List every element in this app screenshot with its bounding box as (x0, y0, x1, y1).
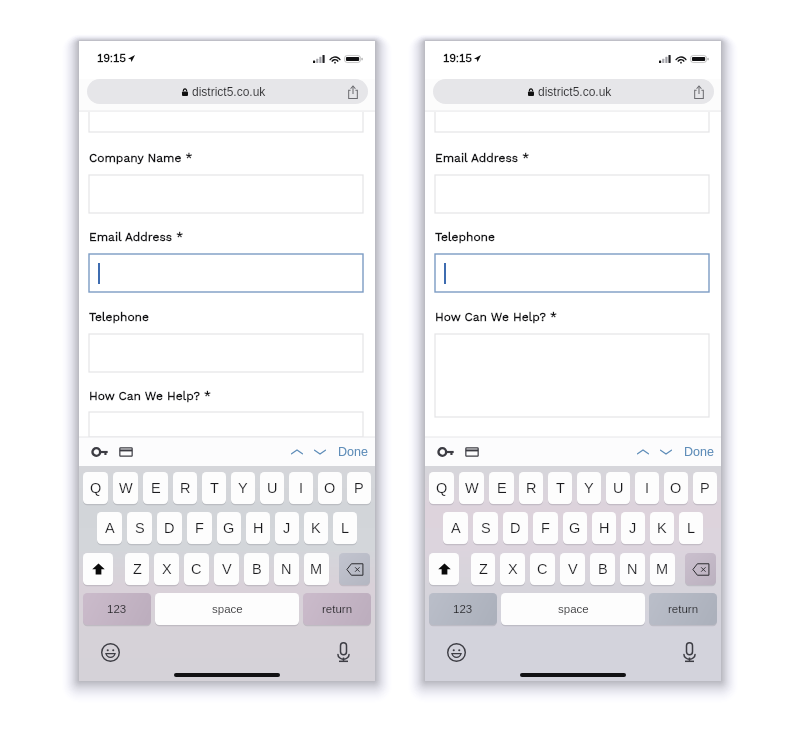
staticText: K (311, 520, 321, 536)
button[interactable] (89, 334, 363, 372)
button[interactable]: Passwords (438, 446, 454, 458)
button[interactable]: L (333, 512, 357, 544)
button[interactable]: O (664, 472, 688, 504)
button[interactable]: L (679, 512, 703, 544)
button[interactable]: 123 (83, 593, 151, 626)
button[interactable]: D (503, 512, 528, 544)
button[interactable]: Next field (312, 445, 328, 459)
button[interactable]: H (592, 512, 616, 544)
button[interactable]: Z (125, 553, 149, 585)
button[interactable]: M (304, 553, 329, 585)
button[interactable]: E (143, 472, 168, 504)
staticText: V (222, 561, 232, 577)
staticText: 123 (453, 603, 473, 616)
button[interactable]: M (650, 553, 675, 585)
button[interactable]: F (187, 512, 212, 544)
button[interactable]: O (318, 472, 342, 504)
button[interactable]: W (459, 472, 484, 504)
staticText: space (558, 603, 589, 616)
button[interactable]: Y (577, 472, 601, 504)
staticText: D (164, 520, 175, 536)
button[interactable]: K (650, 512, 674, 544)
button[interactable] (89, 412, 363, 437)
button[interactable]: Backspace (685, 553, 716, 586)
button[interactable]: U (606, 472, 630, 504)
button[interactable]: Cards (465, 446, 479, 458)
button[interactable]: W (113, 472, 138, 504)
button[interactable]: C (530, 553, 555, 585)
button[interactable]: V (560, 553, 585, 585)
button[interactable]: H (246, 512, 270, 544)
staticText: J (283, 520, 291, 536)
staticText: How Can We Help? * (435, 310, 557, 324)
button[interactable]: return (303, 593, 371, 626)
button[interactable]: Z (471, 553, 495, 585)
button[interactable]: T (202, 472, 226, 504)
button[interactable]: N (620, 553, 645, 585)
button[interactable]: S (473, 512, 498, 544)
button[interactable]: Shift (429, 553, 459, 586)
button[interactable]: Backspace (339, 553, 370, 586)
button[interactable]: Previous field (289, 445, 305, 459)
staticText: R (526, 480, 537, 496)
button[interactable]: Done (684, 445, 714, 459)
button[interactable]: Next field (658, 445, 674, 459)
button[interactable] (435, 254, 709, 292)
button[interactable]: K (304, 512, 328, 544)
button[interactable]: S (127, 512, 152, 544)
button[interactable]: B (244, 553, 269, 585)
button[interactable]: district5.co.uk (87, 79, 368, 104)
button[interactable]: J (275, 512, 299, 544)
button[interactable]: return (649, 593, 717, 626)
button[interactable]: Emoji (101, 643, 120, 662)
button[interactable]: Done (338, 445, 368, 459)
button[interactable]: R (519, 472, 543, 504)
button[interactable]: T (548, 472, 572, 504)
button[interactable]: D (157, 512, 182, 544)
staticText: C (191, 561, 202, 577)
button[interactable] (89, 175, 363, 213)
button[interactable]: E (489, 472, 514, 504)
staticText: U (267, 480, 278, 496)
button[interactable]: Cards (119, 446, 133, 458)
button[interactable]: Q (83, 472, 108, 504)
button[interactable]: P (693, 472, 717, 504)
button[interactable]: Q (429, 472, 454, 504)
button[interactable]: V (214, 553, 239, 585)
button[interactable]: I (289, 472, 313, 504)
button[interactable]: Shift (83, 553, 113, 586)
button[interactable]: X (500, 553, 525, 585)
button[interactable]: Dictation (682, 642, 697, 663)
button[interactable]: space (501, 593, 645, 626)
button[interactable]: 123 (429, 593, 497, 626)
button[interactable]: space (155, 593, 299, 626)
staticText: return (668, 603, 699, 616)
button[interactable]: G (217, 512, 241, 544)
button[interactable]: U (260, 472, 284, 504)
button[interactable]: Share (347, 85, 359, 99)
button[interactable] (435, 175, 709, 213)
button[interactable]: Dictation (336, 642, 351, 663)
staticText: M (656, 561, 669, 577)
button[interactable]: I (635, 472, 659, 504)
button[interactable]: C (184, 553, 209, 585)
button[interactable]: Previous field (635, 445, 651, 459)
button[interactable]: G (563, 512, 587, 544)
button[interactable]: Share (693, 85, 705, 99)
button[interactable]: B (590, 553, 615, 585)
button[interactable]: R (173, 472, 197, 504)
button[interactable]: P (347, 472, 371, 504)
button[interactable]: A (97, 512, 122, 544)
staticText: Y (238, 480, 248, 496)
button[interactable]: F (533, 512, 558, 544)
button[interactable]: Y (231, 472, 255, 504)
button[interactable] (89, 254, 363, 292)
button[interactable]: N (274, 553, 299, 585)
button[interactable]: Emoji (447, 643, 466, 662)
button[interactable]: X (154, 553, 179, 585)
button[interactable]: district5.co.uk (433, 79, 714, 104)
button[interactable]: Passwords (92, 446, 108, 458)
button[interactable]: A (443, 512, 468, 544)
button[interactable]: J (621, 512, 645, 544)
